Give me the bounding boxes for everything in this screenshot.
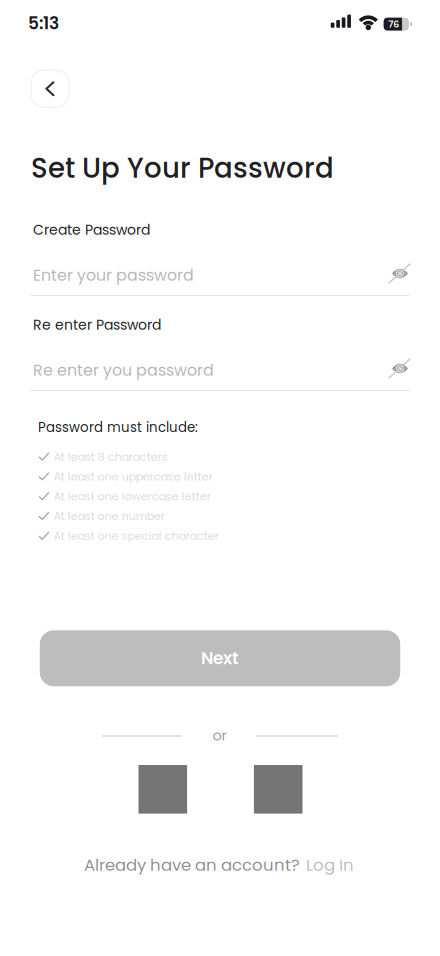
button[interactable]: Back bbox=[30, 69, 69, 108]
staticText: Enter your password bbox=[33, 264, 194, 286]
staticText: Set Up Your Password bbox=[31, 149, 334, 187]
staticText: or bbox=[212, 725, 226, 746]
staticText: Re enter Password bbox=[33, 315, 161, 335]
staticText: Next bbox=[201, 646, 239, 670]
staticText: At least one lowercase letter bbox=[54, 489, 211, 504]
staticText: 5:13 bbox=[28, 11, 59, 35]
staticText: Log In bbox=[306, 853, 354, 877]
button[interactable]: Next bbox=[40, 630, 400, 686]
staticText: Already have an account? bbox=[84, 853, 300, 877]
staticText: At least one number bbox=[54, 508, 165, 524]
button[interactable]: Show password bbox=[388, 356, 412, 380]
button[interactable]: Sign in with Google bbox=[138, 765, 187, 814]
staticText: At least one uppercase letter bbox=[54, 469, 213, 484]
button[interactable]: Sign in with Apple bbox=[254, 765, 302, 814]
staticText: Create Password bbox=[33, 220, 150, 240]
button[interactable]: Log In bbox=[306, 853, 354, 877]
staticText: Password must include: bbox=[38, 418, 198, 437]
staticText: 76 bbox=[388, 17, 399, 31]
button[interactable]: Show password bbox=[388, 261, 412, 285]
staticText: At least 8 characters bbox=[54, 449, 168, 464]
staticText: At least one special character bbox=[54, 528, 219, 544]
staticText: Re enter you password bbox=[33, 359, 214, 381]
